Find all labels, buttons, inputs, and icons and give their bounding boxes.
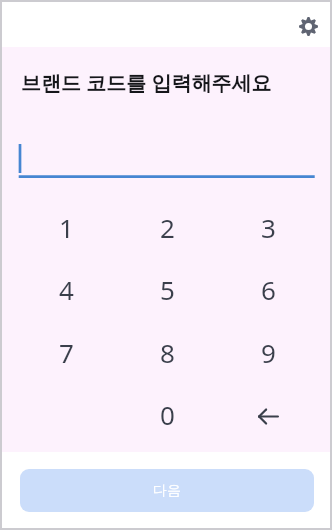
staticText: 브랜드 코드를 입력해주세요 [21,69,272,96]
staticText: 4 [59,272,74,307]
button[interactable]: 6 [220,258,316,320]
button[interactable]: 3 [220,196,316,258]
button[interactable]: 4 [18,258,114,320]
button[interactable]: Brand code input [16,139,320,185]
staticText: 5 [160,272,175,307]
staticText: 6 [261,272,276,307]
button[interactable]: 1 [18,196,114,258]
button[interactable]: Backspace [220,383,316,445]
button[interactable]: 다음 [20,469,314,512]
staticText: 3 [261,210,276,245]
button[interactable]: 0 [119,383,215,445]
button[interactable]: Settings [291,9,326,44]
staticText: 9 [261,335,276,370]
staticText: 7 [59,335,74,370]
button[interactable]: 5 [119,258,215,320]
button[interactable]: 7 [18,321,114,383]
staticText: 2 [160,210,175,245]
staticText: 다음 [153,482,181,500]
button[interactable]: 8 [119,321,215,383]
button[interactable]: 9 [220,321,316,383]
staticText: 0 [160,397,175,432]
button[interactable]: 2 [119,196,215,258]
staticText: 8 [160,335,175,370]
staticText: 1 [59,210,74,245]
